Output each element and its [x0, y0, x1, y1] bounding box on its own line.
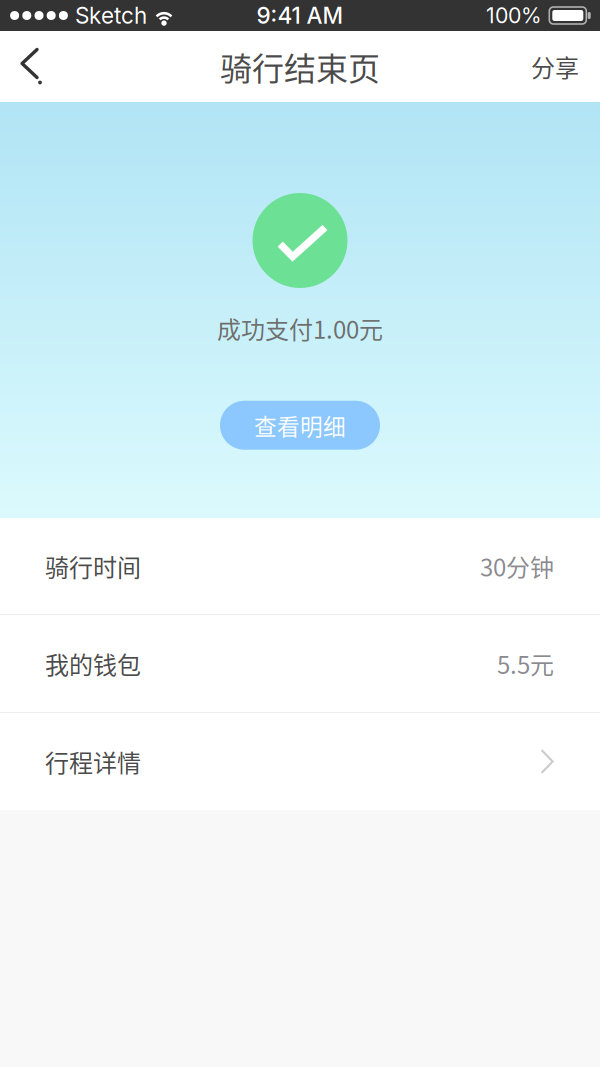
staticText: 骑行结束页 — [220, 43, 380, 90]
staticText: 30分钟 — [480, 549, 554, 583]
staticText: 行程详情 — [45, 744, 141, 779]
staticText: 查看明细 — [254, 409, 346, 442]
staticText: 成功支付1.00元 — [217, 311, 383, 346]
staticText: Sketch — [75, 2, 147, 29]
staticText: 100% — [486, 3, 542, 28]
staticText: 9:41 AM — [256, 2, 343, 29]
staticText: 分享 — [531, 49, 579, 84]
staticText: 我的钱包 — [45, 646, 141, 681]
button[interactable]: 查看明细 — [220, 401, 380, 450]
button[interactable]: 返回 — [0, 31, 62, 102]
button[interactable]: 骑行时间 — [0, 518, 600, 614]
button[interactable]: 行程详情 — [0, 713, 600, 810]
button[interactable]: 我的钱包 — [0, 615, 600, 712]
button[interactable]: 分享 — [510, 31, 600, 102]
staticText: 5.5元 — [497, 646, 554, 681]
staticText: 骑行时间 — [45, 549, 141, 583]
